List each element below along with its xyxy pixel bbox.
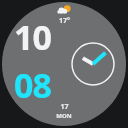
staticText: MON xyxy=(56,112,72,120)
staticText: 10 xyxy=(14,14,51,60)
button[interactable]: 17 xyxy=(56,102,72,120)
staticText: 17° xyxy=(59,16,70,26)
button[interactable]: Analog clock complication xyxy=(70,41,116,87)
staticText: 08 xyxy=(14,62,51,108)
button[interactable]: Weather, 17 degrees, partly cloudy xyxy=(51,5,77,27)
staticText: 17 xyxy=(60,102,69,112)
button[interactable]: 10 xyxy=(14,14,51,108)
